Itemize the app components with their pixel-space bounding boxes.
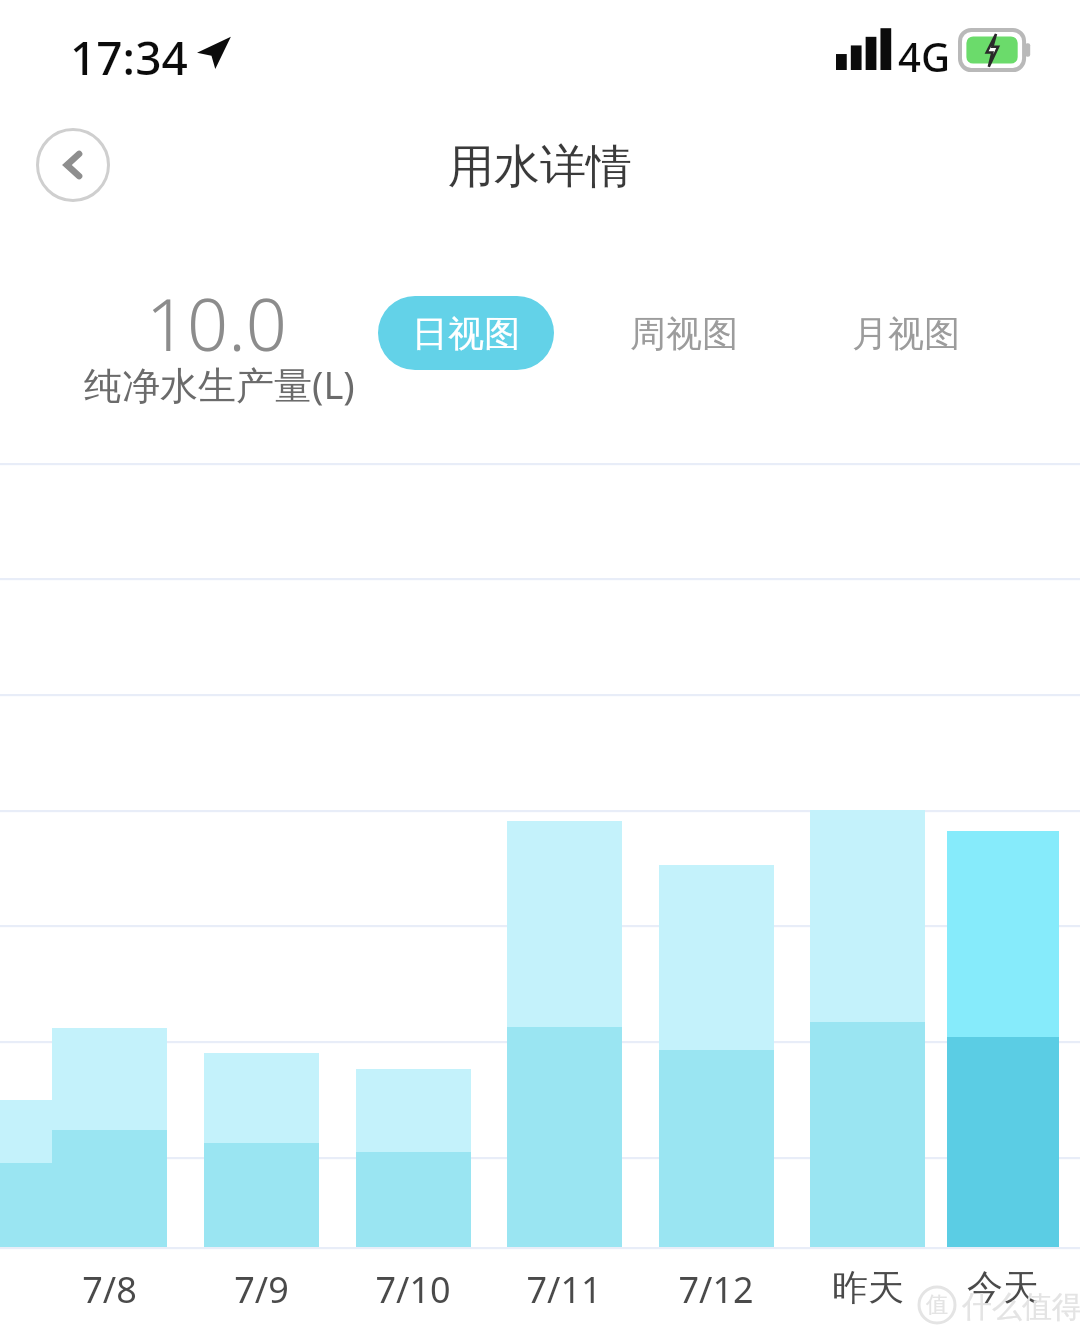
- button[interactable]: 日视图: [378, 296, 554, 370]
- staticText: 10.0: [146, 274, 287, 372]
- button[interactable]: 月视图: [818, 296, 994, 370]
- staticText: 7/11: [526, 1265, 602, 1314]
- staticText: 7/9: [234, 1265, 289, 1314]
- staticText: 月视图: [852, 311, 960, 356]
- staticText: 昨天: [832, 1265, 904, 1310]
- staticText: 周视图: [630, 311, 738, 356]
- button[interactable]: 周视图: [596, 296, 772, 370]
- staticText: 用水详情: [448, 138, 632, 196]
- button[interactable]: Back: [36, 128, 110, 202]
- staticText: 7/10: [375, 1265, 451, 1314]
- staticText: 4G: [898, 29, 950, 83]
- staticText: 17:34: [70, 26, 188, 89]
- staticText: 7/12: [678, 1265, 754, 1314]
- staticText: 什么值得买: [962, 1288, 1080, 1326]
- staticText: 7/8: [82, 1265, 137, 1314]
- staticText: 纯净水生产量(L): [84, 358, 355, 410]
- staticText: 值: [926, 1291, 948, 1319]
- staticText: 今天: [967, 1265, 1039, 1310]
- staticText: 日视图: [412, 311, 520, 356]
